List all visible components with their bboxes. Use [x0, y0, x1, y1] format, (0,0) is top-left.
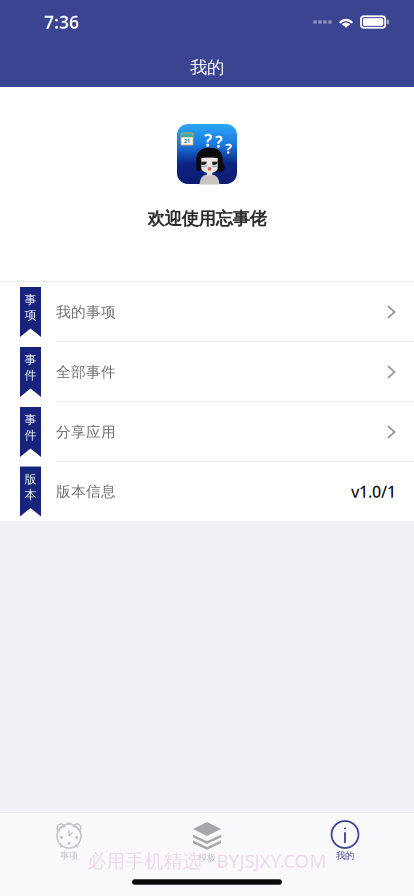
staticText: ?	[204, 128, 212, 151]
button[interactable]: 模板	[138, 821, 276, 868]
staticText: 我的	[336, 850, 354, 861]
staticText: 事	[24, 412, 36, 427]
staticText: 件	[24, 428, 36, 443]
staticText: 全部事件	[56, 363, 116, 381]
staticText: ?	[225, 138, 232, 158]
staticText: 版	[24, 472, 36, 486]
staticText: 欢迎使用忘事佬	[147, 208, 266, 229]
staticText: 21	[184, 137, 190, 145]
staticText: ?	[215, 131, 223, 152]
staticText: 件	[24, 368, 36, 383]
staticText: 我的事项	[56, 303, 116, 321]
staticText: 本	[24, 487, 36, 502]
staticText: v1.0/1	[351, 481, 396, 502]
button[interactable]: 事	[0, 342, 414, 402]
staticText: 必用手机精选 · BYJSJXY.COM	[87, 848, 326, 873]
button[interactable]: 事	[0, 402, 414, 462]
staticText: 事	[24, 352, 36, 367]
button[interactable]: 我的	[276, 821, 414, 868]
staticText: 事项	[60, 850, 78, 861]
staticText: 模板	[198, 852, 216, 863]
staticText: 版本信息	[56, 482, 116, 500]
button[interactable]: 版	[0, 462, 414, 521]
button[interactable]: 事项	[0, 821, 138, 868]
staticText: 分享应用	[56, 423, 116, 441]
staticText: 我的	[190, 57, 224, 78]
staticText: 7:36	[44, 10, 79, 33]
staticText: 项	[24, 308, 36, 323]
button[interactable]: 事	[0, 282, 414, 342]
staticText: 事	[24, 292, 36, 307]
